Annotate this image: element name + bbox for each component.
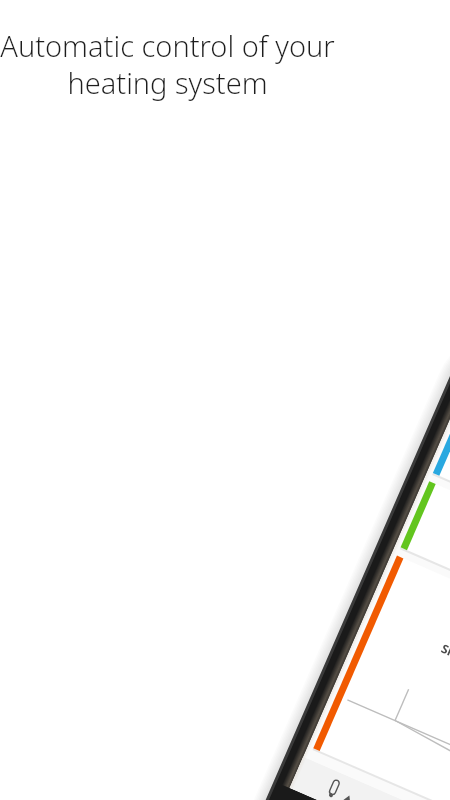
button[interactable]: Automatic control of your heating system <box>0 0 450 800</box>
